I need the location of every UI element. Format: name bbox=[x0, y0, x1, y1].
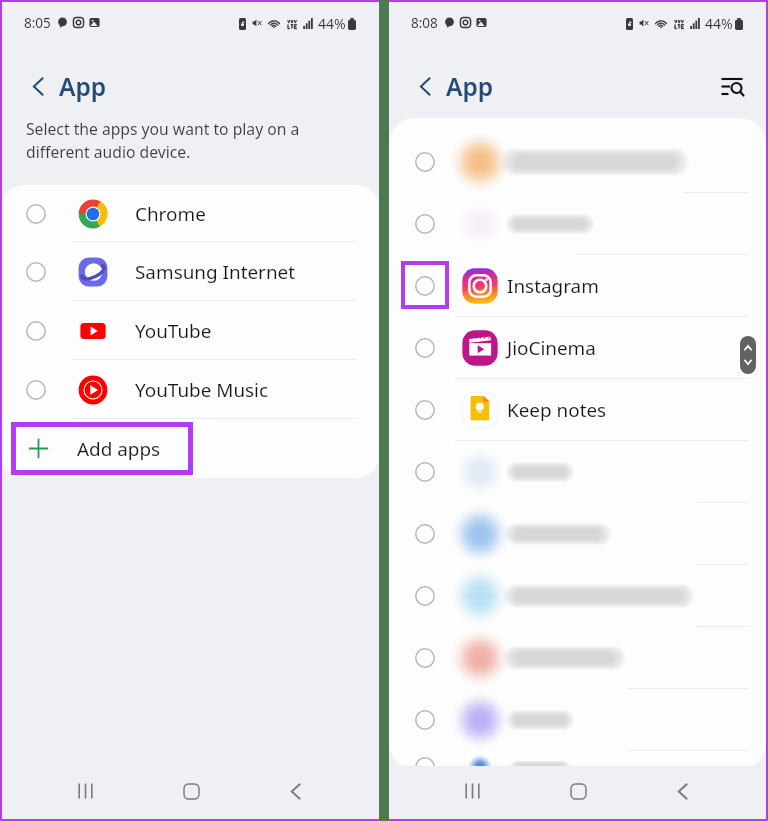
staticText: Chrome bbox=[135, 201, 206, 227]
button[interactable]: Back bbox=[273, 768, 319, 814]
staticText: App bbox=[446, 70, 494, 102]
button[interactable]: Instagram bbox=[389, 255, 766, 317]
button[interactable]: Navigate up bbox=[22, 70, 54, 102]
staticText: JioCinema bbox=[507, 335, 596, 361]
staticText: 8:05 bbox=[24, 14, 51, 32]
staticText: 44% bbox=[318, 14, 346, 33]
button[interactable]: Chrome bbox=[2, 185, 379, 242]
button[interactable]: Samsung Internet bbox=[2, 242, 379, 301]
staticText: Keep notes bbox=[507, 397, 607, 423]
staticText: 8:08 bbox=[411, 14, 438, 32]
staticText: Instagram bbox=[507, 273, 599, 299]
staticText: 44% bbox=[705, 14, 733, 33]
button[interactable]: Back bbox=[660, 768, 706, 814]
button[interactable]: Add apps bbox=[2, 419, 379, 478]
button[interactable]: Keep notes bbox=[389, 379, 766, 441]
button[interactable]: Home bbox=[555, 768, 601, 814]
button[interactable]: Search bbox=[714, 68, 750, 104]
staticText: Add apps bbox=[77, 436, 161, 462]
button[interactable]: Recent apps bbox=[62, 768, 108, 814]
button[interactable]: YouTube Music bbox=[2, 360, 379, 419]
staticText: YouTube Music bbox=[135, 377, 269, 403]
button[interactable]: Home bbox=[168, 768, 214, 814]
staticText: Select the apps you want to play on a di… bbox=[26, 118, 300, 162]
staticText: YouTube bbox=[135, 318, 212, 344]
button[interactable]: Navigate up bbox=[409, 70, 441, 102]
staticText: App bbox=[59, 70, 107, 102]
staticText: Samsung Internet bbox=[135, 259, 296, 285]
button[interactable]: JioCinema bbox=[389, 317, 766, 379]
button[interactable]: YouTube bbox=[2, 301, 379, 360]
button[interactable]: Recent apps bbox=[449, 768, 495, 814]
